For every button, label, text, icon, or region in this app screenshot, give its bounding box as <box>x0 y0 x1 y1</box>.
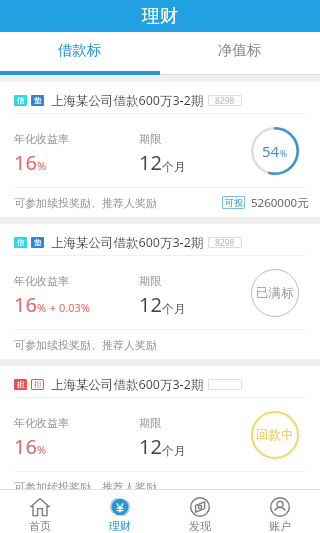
button[interactable]: 信 <box>0 224 320 359</box>
staticText: 个月 <box>162 443 186 458</box>
staticText: 信 <box>17 96 25 105</box>
button[interactable]: 担 <box>0 366 320 501</box>
staticText: 16 <box>14 291 37 318</box>
staticText: 12 <box>139 149 162 176</box>
staticText: 担 <box>34 380 42 389</box>
staticText: + 0.03% <box>47 300 90 315</box>
staticText: % <box>37 158 47 173</box>
staticText: % <box>37 442 47 457</box>
button[interactable]: Discover <box>160 490 240 533</box>
button[interactable]: Home <box>0 490 80 533</box>
other: Discover <box>190 497 210 517</box>
other: Account <box>270 497 290 517</box>
button[interactable]: Finance <box>80 490 160 533</box>
staticText: 首页 <box>29 519 51 533</box>
other: Home <box>30 497 50 517</box>
staticText: 8298 <box>215 95 235 106</box>
staticText: 上海某公司借款600万3-2期 <box>51 234 204 251</box>
staticText: % <box>280 148 288 160</box>
other: Finance <box>110 497 130 517</box>
button[interactable]: 信 <box>0 82 320 217</box>
staticText: 借款标 <box>58 41 102 59</box>
button[interactable]: Account <box>240 490 320 533</box>
staticText: 发现 <box>189 519 211 533</box>
staticText: 年化收益率 <box>14 274 69 288</box>
staticText: 5260000元 <box>251 195 309 211</box>
staticText: 12 <box>139 433 162 460</box>
staticText: 垫 <box>34 96 42 105</box>
staticText: % <box>37 300 47 315</box>
staticText: 理财 <box>142 5 178 28</box>
staticText: 年化收益率 <box>14 416 69 430</box>
staticText: 上海某公司借款600万3-2期 <box>51 376 204 393</box>
button[interactable]: 净值标 <box>160 32 320 67</box>
staticText: 回款中 <box>256 427 294 443</box>
staticText: 垫 <box>34 238 42 247</box>
staticText: 12 <box>139 291 162 318</box>
staticText: 16 <box>14 149 37 176</box>
staticText: 上海某公司借款600万3-2期 <box>51 92 204 109</box>
staticText: 可参加续投奖励、推荐人奖励 <box>14 338 157 352</box>
staticText: 净值标 <box>218 41 262 59</box>
staticText: 年化收益率 <box>14 132 69 146</box>
staticText: 8298 <box>215 237 235 248</box>
staticText: 账户 <box>269 519 291 533</box>
staticText: 担 <box>17 380 25 389</box>
staticText: 16 <box>14 433 37 460</box>
button[interactable]: 借款标 <box>0 32 160 67</box>
staticText: 可投 <box>225 197 243 208</box>
staticText: 可参加续投奖励、推荐人奖励 <box>14 196 157 210</box>
staticText: 期限 <box>139 132 161 146</box>
staticText: 54 <box>262 141 280 161</box>
staticText: 个月 <box>162 301 186 316</box>
staticText: 期限 <box>139 274 161 288</box>
staticText: 已满标 <box>256 285 294 301</box>
staticText: 期限 <box>139 416 161 430</box>
staticText: 信 <box>17 238 25 247</box>
staticText: 个月 <box>162 159 186 174</box>
staticText: 理财 <box>109 519 131 533</box>
staticText: 可参加续投奖励、推荐人奖励 <box>14 480 157 494</box>
